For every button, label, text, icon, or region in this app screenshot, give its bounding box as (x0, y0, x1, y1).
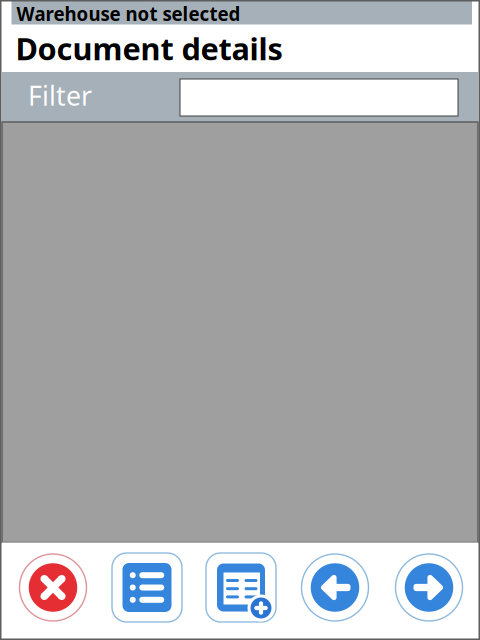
staticText: Document details (15, 28, 282, 69)
button[interactable]: Next (382, 542, 476, 632)
button[interactable]: New document (194, 542, 288, 632)
staticText: Warehouse not selected (16, 1, 240, 26)
button[interactable]: Cancel (6, 542, 100, 632)
button[interactable]: Previous (288, 542, 382, 632)
staticText: Filter (28, 78, 92, 113)
button[interactable]: Document list (100, 542, 194, 632)
